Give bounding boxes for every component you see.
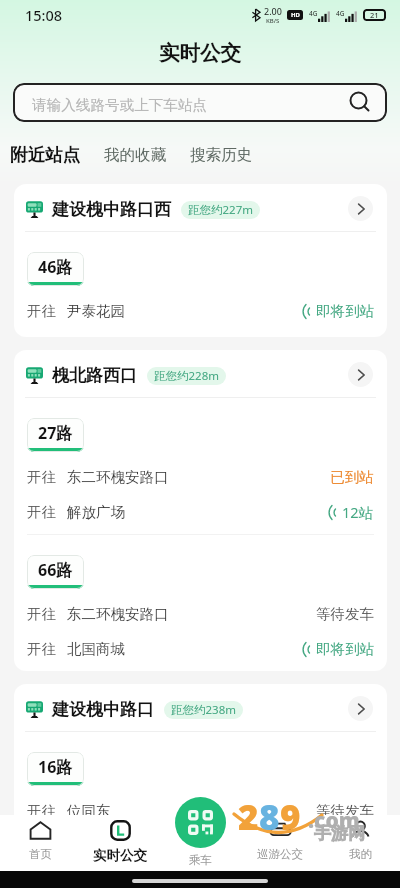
button[interactable]: 27路: [14, 398, 387, 534]
staticText: 乘车: [189, 853, 212, 867]
staticText: 开往: [27, 802, 56, 820]
staticText: 等待发车: [316, 802, 374, 820]
button[interactable]: 我的收藏: [97, 139, 173, 171]
staticText: 东二环槐安路口: [67, 468, 169, 486]
staticText: 已到站: [330, 468, 374, 486]
staticText: 15:08: [25, 5, 63, 25]
staticText: 开往: [27, 640, 56, 658]
staticText: 槐北路西口: [52, 365, 137, 386]
button[interactable]: 槐北路西口: [14, 350, 387, 397]
staticText: 16路: [38, 756, 73, 778]
staticText: 27路: [38, 422, 73, 444]
staticText: 2: [238, 793, 259, 841]
staticText: 12站: [342, 502, 374, 522]
button[interactable]: 请输入线路号或上下车站点: [13, 83, 387, 122]
button[interactable]: 乘车: [175, 797, 226, 848]
staticText: 解放广场: [67, 503, 125, 521]
staticText: 手游网: [314, 823, 365, 844]
staticText: 开往: [27, 605, 56, 623]
staticText: 请输入线路号或上下车站点: [32, 96, 208, 114]
staticText: KB/S: [266, 17, 280, 25]
button[interactable]: 查看站点: [348, 196, 373, 221]
staticText: 我的: [349, 847, 372, 861]
button[interactable]: 实时公交: [80, 815, 160, 873]
staticText: 8: [259, 793, 280, 841]
button[interactable]: 查看站点: [348, 696, 373, 721]
staticText: 北国商城: [67, 640, 125, 658]
button[interactable]: 首页: [0, 815, 80, 873]
button[interactable]: 搜索历史: [183, 139, 259, 171]
staticText: 9: [280, 793, 301, 841]
other: 我的: [349, 819, 372, 842]
other: 搜索: [350, 92, 372, 114]
staticText: 即将到站: [316, 640, 374, 658]
staticText: 距您约228m: [154, 368, 219, 384]
staticText: .com: [308, 806, 360, 835]
staticText: 距您约227m: [188, 202, 253, 218]
other: 巡游公交: [269, 819, 292, 842]
button[interactable]: 查看站点: [348, 362, 373, 387]
staticText: 即将到站: [316, 302, 374, 320]
button[interactable]: 建设槐中路口: [14, 684, 387, 731]
staticText: 距您约238m: [171, 702, 236, 718]
button[interactable]: 46路: [14, 232, 387, 337]
staticText: 首页: [29, 847, 52, 861]
button[interactable]: 巡游公交: [240, 815, 320, 873]
staticText: 搜索历史: [190, 145, 252, 165]
staticText: 4G: [309, 9, 318, 18]
staticText: 46路: [38, 256, 73, 278]
staticText: 66路: [38, 559, 73, 581]
staticText: 实时公交: [159, 40, 241, 66]
other: 首页: [29, 819, 52, 842]
staticText: 等待发车: [316, 605, 374, 623]
button[interactable]: 建设槐中路口西: [14, 184, 387, 231]
staticText: HD: [291, 11, 300, 19]
staticText: 开往: [27, 302, 56, 320]
staticText: 建设槐中路口: [52, 699, 154, 720]
staticText: 我的收藏: [104, 145, 166, 165]
staticText: 开往: [27, 468, 56, 486]
staticText: 21: [370, 10, 379, 20]
staticText: 尹泰花园: [67, 302, 125, 320]
staticText: 建设槐中路口西: [52, 199, 171, 220]
button[interactable]: 16路: [14, 732, 387, 837]
staticText: 开往: [27, 503, 56, 521]
other: 实时公交: [109, 819, 132, 842]
staticText: 4G: [336, 9, 345, 18]
button[interactable]: 66路: [14, 535, 387, 671]
staticText: 巡游公交: [257, 847, 303, 861]
staticText: 附近站点: [10, 144, 80, 166]
staticText: 2.00: [264, 5, 282, 17]
staticText: 位同东: [67, 802, 111, 820]
staticText: 实时公交: [93, 847, 147, 864]
button[interactable]: 附近站点: [3, 138, 87, 172]
staticText: 东二环槐安路口: [67, 605, 169, 623]
button[interactable]: 我的: [320, 815, 400, 873]
